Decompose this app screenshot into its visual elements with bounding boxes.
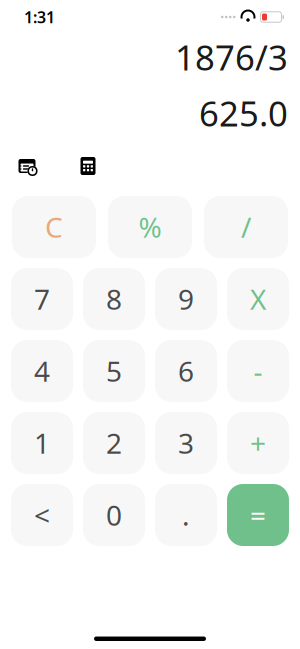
staticText: 7 [34, 280, 50, 318]
button[interactable]: 2 [83, 412, 145, 474]
button[interactable]: < [11, 484, 73, 546]
staticText: = [250, 496, 266, 534]
staticText: 0 [106, 496, 122, 534]
button[interactable]: X [227, 268, 289, 330]
staticText: 625.0 [199, 90, 288, 136]
staticText: 1:31 [24, 6, 55, 28]
button[interactable]: C [12, 196, 96, 258]
staticText: 5 [106, 352, 122, 390]
button[interactable]: 9 [155, 268, 217, 330]
button[interactable]: 7 [11, 268, 73, 330]
button[interactable]: 8 [83, 268, 145, 330]
button[interactable]: 3 [155, 412, 217, 474]
staticText: 2 [106, 424, 122, 462]
staticText: . [182, 496, 190, 534]
staticText: < [34, 496, 50, 534]
button[interactable]: 1 [11, 412, 73, 474]
staticText: % [138, 208, 161, 246]
staticText: 3 [178, 424, 194, 462]
staticText: + [250, 424, 266, 462]
staticText: 8 [106, 280, 122, 318]
button[interactable]: . [155, 484, 217, 546]
button[interactable]: - [227, 340, 289, 402]
staticText: X [250, 280, 266, 318]
button[interactable]: % [108, 196, 192, 258]
staticText: / [241, 208, 251, 246]
button[interactable]: 6 [155, 340, 217, 402]
staticText: - [253, 352, 262, 390]
button[interactable]: 5 [83, 340, 145, 402]
button[interactable]: History [10, 152, 44, 180]
staticText: 9 [178, 280, 194, 318]
button[interactable]: 0 [83, 484, 145, 546]
staticText: 1876/3 [175, 34, 288, 80]
staticText: 4 [34, 352, 50, 390]
button[interactable]: / [204, 196, 288, 258]
staticText: 6 [178, 352, 194, 390]
staticText: 1 [34, 424, 50, 462]
staticText: C [45, 208, 63, 246]
button[interactable]: = [227, 484, 289, 546]
button[interactable]: Calculator [71, 152, 105, 180]
button[interactable]: + [227, 412, 289, 474]
button[interactable]: 4 [11, 340, 73, 402]
